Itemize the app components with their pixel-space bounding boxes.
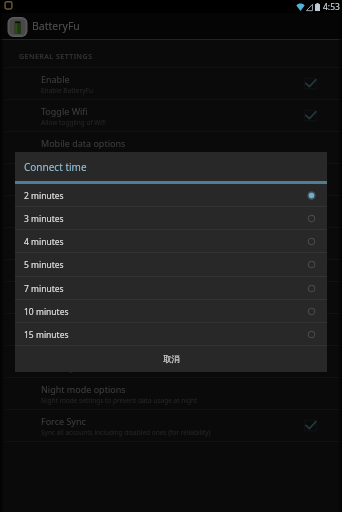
button[interactable]: Night mode options	[0, 378, 342, 409]
button[interactable]: Screen on	[0, 228, 342, 259]
button[interactable]: Mobile data options	[0, 132, 342, 163]
staticText: 7 minutes	[24, 283, 307, 295]
button[interactable]: 10 minutes	[15, 300, 327, 323]
staticText: Screen on	[41, 233, 83, 245]
staticText: Reconnect on screen unlock	[41, 332, 127, 341]
button[interactable]: Night mode	[0, 346, 342, 377]
staticText: Allow toggling of Wifi	[41, 118, 106, 127]
staticText: Connect time	[41, 169, 98, 181]
button[interactable]: 取消	[15, 346, 327, 372]
staticText: Night mode settings to prevent data usag…	[41, 396, 198, 405]
button[interactable]: 7 minutes	[15, 277, 327, 300]
staticText: Keep data on while screen is on	[41, 246, 138, 255]
button[interactable]: Sleep time	[0, 196, 342, 227]
button[interactable]: BatteryFu	[0, 13, 342, 39]
staticText: How long to stay connected when syncing	[41, 182, 170, 191]
button[interactable]: Toggle Wifi	[0, 100, 342, 131]
staticText: 5 minutes	[24, 259, 307, 271]
staticText: Enable	[41, 73, 70, 85]
button[interactable]: 3 minutes	[15, 207, 327, 230]
button[interactable]: 15 minutes	[15, 323, 327, 346]
button[interactable]: 5 minutes	[15, 253, 327, 276]
staticText: GENERAL SETTINGS	[19, 52, 93, 62]
staticText: BatteryFu	[32, 19, 80, 33]
staticText: 3 minutes	[24, 213, 307, 225]
staticText: How long to sleep between syncs	[41, 214, 143, 223]
staticText: Sync all accounts including disabled one…	[41, 428, 211, 437]
button[interactable]: Enable	[0, 68, 342, 99]
staticText: Tethering	[41, 287, 82, 299]
staticText: ADVANCED SETTINGS	[19, 266, 100, 276]
button[interactable]: Connect time	[0, 164, 342, 195]
staticText: Enable night mode	[41, 364, 99, 373]
staticText: Force Sync	[41, 415, 86, 427]
staticText: Keep data on while tethering	[41, 300, 130, 309]
staticText: 取消	[163, 354, 180, 365]
staticText: 4:53	[323, 1, 340, 13]
staticText: 2 minutes	[24, 190, 307, 202]
staticText: Enable BatteryFu	[41, 86, 93, 95]
staticText: 10 minutes	[24, 306, 307, 318]
button[interactable]: 4 minutes	[15, 230, 327, 253]
staticText: 4 minutes	[24, 236, 307, 248]
staticText: Reconnect	[41, 319, 86, 331]
button[interactable]: Reconnect	[0, 314, 342, 345]
staticText: Mobile data options	[41, 137, 126, 149]
staticText: Sleep time	[41, 201, 86, 213]
staticText: Toggle Wifi	[41, 105, 88, 117]
staticText: 15 minutes	[24, 329, 307, 341]
staticText: Advanced mobile data switching options	[41, 150, 165, 159]
staticText: Night mode options	[41, 383, 126, 395]
button[interactable]: Tethering	[0, 282, 342, 313]
staticText: Connect time	[24, 160, 87, 174]
button[interactable]: 2 minutes	[15, 184, 327, 207]
button[interactable]: Force Sync	[0, 410, 342, 441]
